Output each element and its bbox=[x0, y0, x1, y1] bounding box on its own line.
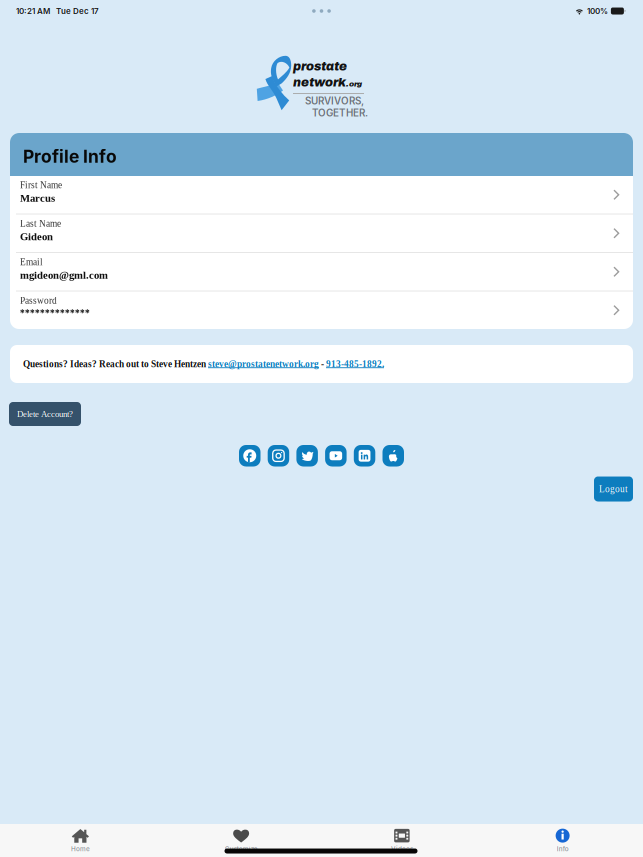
button[interactable]: Instagram bbox=[268, 445, 289, 466]
staticText: Gideon bbox=[20, 231, 53, 243]
staticText: Password bbox=[20, 295, 57, 306]
button[interactable]: Email bbox=[10, 253, 633, 290]
button[interactable]: Logout bbox=[594, 476, 633, 501]
staticText: Info bbox=[557, 845, 569, 853]
staticText: - bbox=[319, 359, 326, 369]
staticText: Email bbox=[20, 257, 43, 267]
button[interactable]: 913-485-1892. bbox=[326, 359, 384, 369]
button[interactable]: steve@prostatenetwork.org bbox=[208, 359, 319, 369]
button[interactable]: LinkedIn bbox=[354, 445, 375, 466]
button[interactable]: Videos bbox=[321, 824, 482, 857]
button[interactable]: Password bbox=[10, 291, 633, 329]
staticText: 100% bbox=[587, 6, 608, 16]
staticText: Customize bbox=[225, 845, 258, 853]
button[interactable]: Delete Account? bbox=[9, 402, 81, 426]
staticText: Last Name bbox=[20, 218, 61, 229]
staticText: network bbox=[293, 76, 346, 89]
staticText: .org bbox=[346, 80, 362, 88]
button[interactable]: YouTube bbox=[325, 445, 347, 466]
staticText: ************** bbox=[20, 308, 90, 318]
staticText: Logout bbox=[599, 484, 628, 494]
staticText: steve@prostatenetwork.org bbox=[208, 359, 319, 369]
button[interactable]: Customize bbox=[161, 824, 322, 857]
staticText: 10:21 AM bbox=[16, 6, 50, 16]
staticText: mgideon@gml.com bbox=[20, 269, 108, 281]
staticText: TOGETHER. bbox=[312, 107, 368, 119]
button[interactable]: Home bbox=[0, 824, 161, 857]
button[interactable]: Last Name bbox=[10, 214, 633, 252]
staticText: Home bbox=[71, 845, 90, 853]
button[interactable]: First Name bbox=[10, 176, 633, 213]
staticText: Profile Info bbox=[23, 146, 117, 167]
staticText: Questions? Ideas? Reach out to Steve Hen… bbox=[23, 359, 208, 369]
staticText: prostate bbox=[293, 60, 347, 73]
staticText: SURVIVORS, bbox=[305, 95, 364, 107]
staticText: Videos bbox=[391, 845, 413, 853]
staticText: Marcus bbox=[20, 192, 55, 204]
staticText: 913-485-1892. bbox=[326, 359, 384, 369]
button[interactable]: Apple bbox=[382, 445, 404, 466]
staticText: Delete Account? bbox=[17, 409, 73, 419]
button[interactable]: Info bbox=[482, 824, 643, 857]
button[interactable]: Twitter bbox=[296, 445, 318, 466]
staticText: Tue Dec 17 bbox=[50, 6, 99, 16]
staticText: First Name bbox=[20, 180, 62, 190]
button[interactable]: Facebook bbox=[239, 445, 260, 466]
